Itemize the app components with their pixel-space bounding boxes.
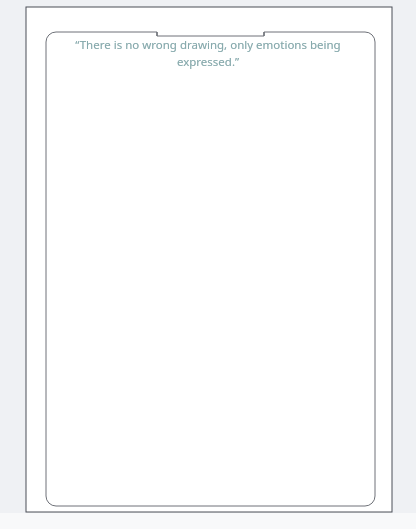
- button[interactable]: Quote page: [0, 0, 416, 529]
- staticText: “There is no wrong drawing, only emotion…: [62, 37, 354, 70]
- button[interactable]: “There is no wrong drawing, only emotion…: [62, 37, 354, 70]
